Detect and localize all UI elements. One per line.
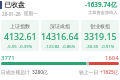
button[interactable]: 创业板指 [81, 20, 119, 51]
staticText: 较上一日 [79, 69, 100, 76]
button[interactable]: 上证指数 [1, 20, 39, 51]
staticText: 深证成指 [50, 23, 70, 29]
staticText: 3280亿 [32, 69, 48, 76]
staticText: 3771 [1, 54, 15, 62]
staticText: 星期一 [24, 11, 38, 17]
staticText: 3319.15 [84, 31, 117, 43]
staticText: -123.82 [45, 44, 60, 50]
staticText: 创业板指 [90, 23, 110, 29]
staticText: 4132.61 [4, 31, 37, 43]
staticText: 上证指数 [10, 23, 30, 29]
staticText: 14316.64 [41, 31, 79, 43]
staticText: -1639.74亿 [85, 0, 118, 9]
staticText: -0.39% [19, 44, 33, 50]
staticText: +1625亿 [100, 69, 119, 76]
staticText: 大盘资金净流入 [88, 10, 118, 15]
staticText: -0.86% [62, 44, 76, 50]
staticText: -0.91% [101, 44, 115, 50]
staticText: 1604 [105, 54, 119, 62]
staticText: 日成交额总计 [1, 69, 32, 76]
staticText: 26-01-26 [2, 11, 21, 17]
button[interactable]: 深证成指 [41, 20, 79, 51]
staticText: -5.55 [7, 44, 17, 50]
staticText: 已收盘 [4, 0, 25, 9]
staticText: -30.35 [86, 44, 99, 50]
